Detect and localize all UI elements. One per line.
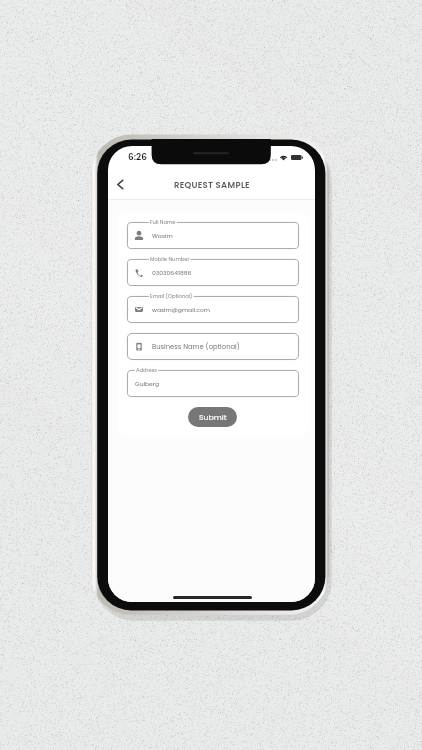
staticText: Gulberg (135, 380, 160, 388)
staticText: REQUEST SAMPLE (174, 179, 250, 191)
staticText: Email (Optional) (150, 293, 193, 300)
button[interactable]: Business Name (optional) (127, 333, 299, 360)
button[interactable]: Back (108, 172, 132, 196)
staticText: Business Name (optional) (152, 342, 240, 352)
button[interactable]: Email (Optional) (127, 296, 299, 323)
staticText: 6:26 (128, 151, 147, 163)
staticText: Mobile Number (150, 256, 190, 263)
button[interactable]: Full Name (127, 222, 299, 249)
staticText: Address (136, 367, 158, 374)
button[interactable]: Submit (188, 407, 237, 427)
button[interactable]: Address (127, 370, 299, 397)
staticText: Wasim (152, 232, 173, 240)
staticText: wasim@gmail.com (152, 306, 211, 314)
staticText: Submit (199, 412, 227, 423)
staticText: Full Name (150, 219, 176, 226)
staticText: 03030641886 (152, 269, 192, 277)
button[interactable]: Mobile Number (127, 259, 299, 286)
